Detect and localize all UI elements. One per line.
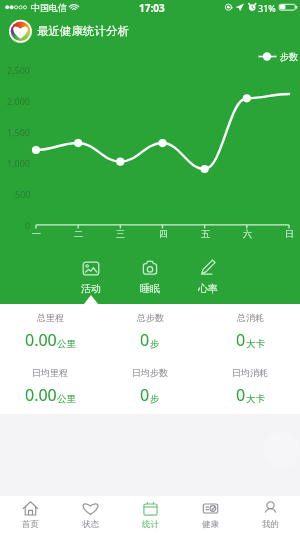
button[interactable]: 总消耗 xyxy=(200,304,300,359)
staticText: 六 xyxy=(243,228,252,239)
staticText: 步 xyxy=(150,338,160,350)
button[interactable]: 日均消耗 xyxy=(200,359,300,414)
staticText: 日均步数 xyxy=(132,367,168,378)
staticText: 日均消耗 xyxy=(232,367,268,378)
staticText: 三 xyxy=(116,228,125,239)
staticText: 首页 xyxy=(22,519,39,530)
staticText: 活动 xyxy=(81,282,101,295)
staticText: 大卡 xyxy=(246,393,265,405)
staticText: 公里 xyxy=(57,338,76,350)
staticText: 总消耗 xyxy=(237,312,264,323)
staticText: 0 xyxy=(140,329,150,351)
staticText: 0 xyxy=(236,329,246,351)
staticText: 2,500 xyxy=(7,64,31,76)
staticText: 0 xyxy=(236,384,246,406)
staticText: 0.00 xyxy=(25,329,57,351)
staticText: 1,000 xyxy=(7,157,31,169)
button[interactable]: 总里程 xyxy=(0,304,100,359)
staticText: 500 xyxy=(15,188,31,200)
staticText: 0 xyxy=(25,219,31,231)
button[interactable]: 健康 xyxy=(180,496,240,533)
button[interactable]: 首页 xyxy=(0,496,60,533)
staticText: 2,000 xyxy=(7,95,31,107)
button[interactable]: 状态 xyxy=(60,496,120,533)
staticText: 二 xyxy=(74,228,83,239)
staticText: 心率 xyxy=(198,282,218,295)
button[interactable]: 总步数 xyxy=(100,304,200,359)
staticText: 睡眠 xyxy=(140,282,160,295)
staticText: 四 xyxy=(159,228,168,239)
button[interactable]: 日均步数 xyxy=(100,359,200,414)
staticText: 0.00 xyxy=(25,384,57,406)
button[interactable]: 我的 xyxy=(240,496,300,533)
button[interactable]: 日均里程 xyxy=(0,359,100,414)
staticText: 一 xyxy=(32,228,41,239)
staticText: 大卡 xyxy=(246,338,265,350)
staticText: 日 xyxy=(285,228,294,239)
button[interactable]: 心率 xyxy=(179,256,237,296)
staticText: 步 xyxy=(150,393,160,405)
staticText: 最近健康统计分析 xyxy=(37,24,129,38)
staticText: 我的 xyxy=(262,519,279,530)
staticText: 日均里程 xyxy=(32,367,68,378)
staticText: 健康 xyxy=(202,519,219,530)
button[interactable]: 活动 xyxy=(62,256,120,296)
staticText: 状态 xyxy=(82,519,99,530)
staticText: 31% xyxy=(258,2,276,14)
staticText: 17:03 xyxy=(139,1,165,15)
staticText: 0 xyxy=(140,384,150,406)
button[interactable]: 睡眠 xyxy=(121,256,179,296)
staticText: 总步数 xyxy=(137,312,164,323)
staticText: 中国电信 xyxy=(31,2,67,13)
button[interactable]: 统计 xyxy=(120,496,180,533)
staticText: 1,500 xyxy=(7,126,31,138)
staticText: 步数 xyxy=(280,51,298,62)
staticText: 五 xyxy=(201,228,210,239)
staticText: 总里程 xyxy=(37,312,64,323)
staticText: 公里 xyxy=(57,393,76,405)
staticText: 统计 xyxy=(142,519,159,530)
